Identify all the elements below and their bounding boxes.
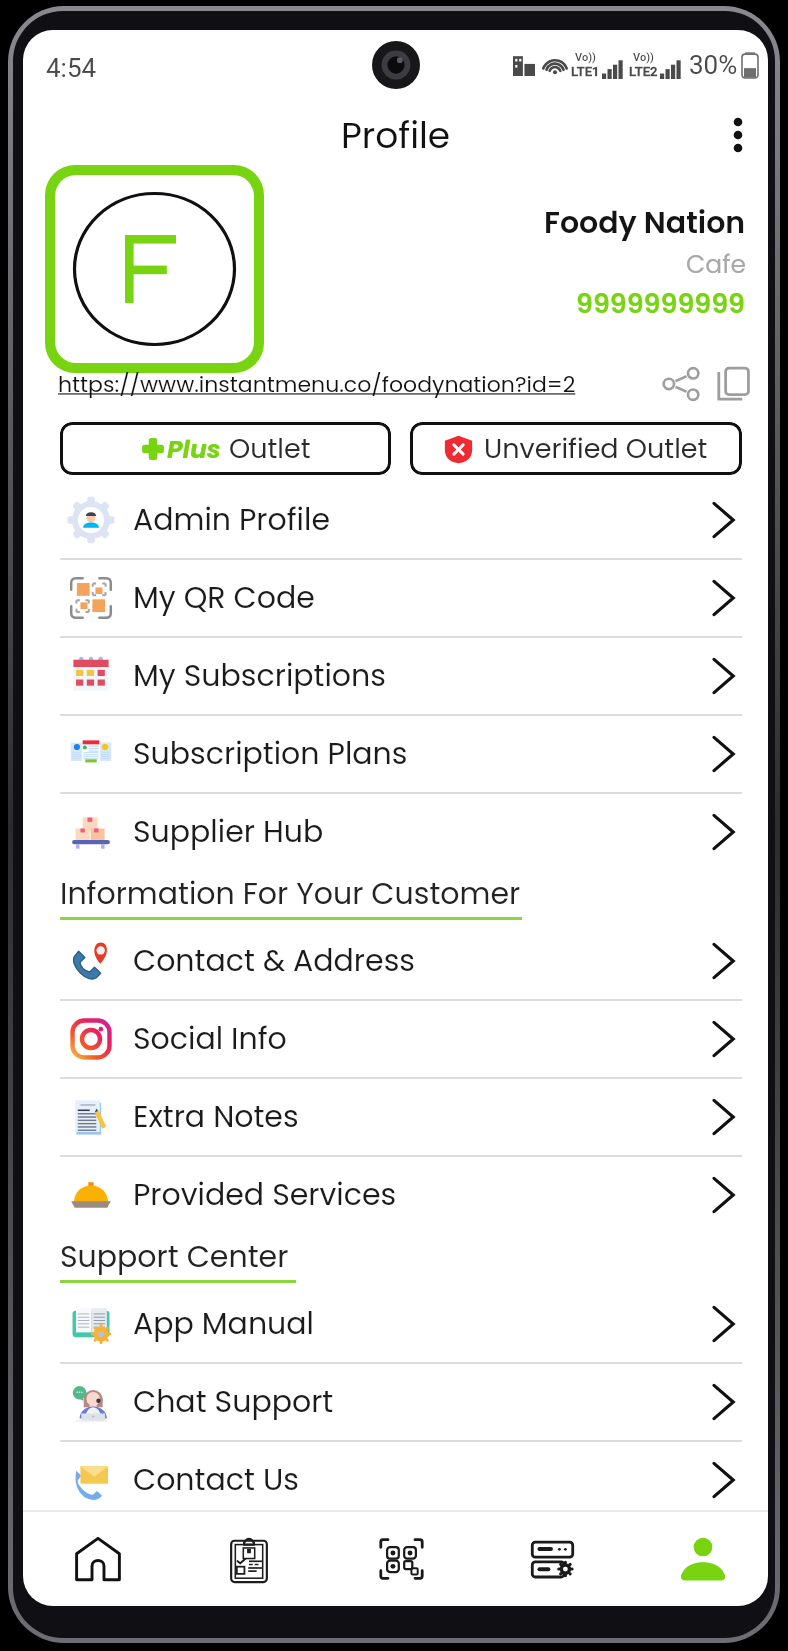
button[interactable]: Supplier Hub xyxy=(23,794,768,870)
button[interactable]: Scan QR code xyxy=(327,1512,475,1606)
button[interactable]: Profile xyxy=(629,1512,768,1606)
staticText: 30% xyxy=(689,50,738,80)
staticText: Profile xyxy=(341,110,451,160)
staticText: Plus xyxy=(167,432,221,467)
staticText: Admin Profile xyxy=(133,499,702,541)
button[interactable]: My Subscriptions xyxy=(23,638,768,714)
staticText: 4:54 xyxy=(46,53,97,83)
button[interactable] xyxy=(55,175,254,363)
button[interactable]: More options xyxy=(710,107,766,163)
staticText: Subscription Plans xyxy=(133,733,702,775)
button[interactable]: Extra Notes xyxy=(23,1079,768,1155)
button[interactable]: Subscription Plans xyxy=(23,716,768,792)
staticText: Vo)) xyxy=(575,51,596,64)
staticText: LTE2 xyxy=(629,64,658,79)
staticText: Outlet xyxy=(229,430,311,468)
button[interactable]: My orders xyxy=(175,1512,323,1606)
button[interactable]: Social Info xyxy=(23,1001,768,1077)
staticText: Contact & Address xyxy=(133,940,702,982)
staticText: Provided Services xyxy=(133,1174,702,1216)
button[interactable]: Contact Us xyxy=(23,1442,768,1518)
staticText: Social Info xyxy=(133,1018,702,1060)
staticText: LTE1 xyxy=(571,64,600,79)
button[interactable]: Manage menu xyxy=(478,1512,626,1606)
staticText: App Manual xyxy=(133,1303,702,1345)
staticText: Vo)) xyxy=(633,51,654,64)
button[interactable]: Plus xyxy=(60,422,391,475)
staticText: Foody Nation xyxy=(544,202,746,244)
button[interactable]: Contact & Address xyxy=(23,923,768,999)
button[interactable]: Unverified Outlet xyxy=(410,422,742,475)
staticText: 9999999999 xyxy=(576,285,746,323)
staticText: Unverified Outlet xyxy=(484,430,708,468)
button[interactable]: Copy link xyxy=(710,360,758,408)
staticText: Support Center xyxy=(60,1236,289,1278)
staticText: Information For Your Customer xyxy=(60,873,521,915)
button[interactable]: https://www.instantmenu.co/foodynation?i… xyxy=(58,369,576,400)
button[interactable]: My QR Code xyxy=(23,560,768,636)
staticText: Chat Support xyxy=(133,1381,702,1423)
button[interactable]: Provided Services xyxy=(23,1157,768,1233)
button[interactable]: Home xyxy=(24,1512,172,1606)
staticText: Contact Us xyxy=(133,1459,702,1501)
button[interactable]: Chat Support xyxy=(23,1364,768,1440)
staticText: Supplier Hub xyxy=(133,811,702,853)
staticText: Cafe xyxy=(686,247,746,282)
button[interactable]: Share xyxy=(657,360,705,408)
button[interactable]: App Manual xyxy=(23,1286,768,1362)
staticText: My Subscriptions xyxy=(133,655,702,697)
staticText: My QR Code xyxy=(133,577,702,619)
button[interactable]: Admin Profile xyxy=(23,482,768,558)
staticText: Extra Notes xyxy=(133,1096,702,1138)
